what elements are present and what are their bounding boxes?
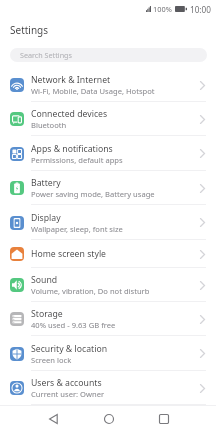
staticText: Connected devices: [31, 108, 108, 120]
staticText: 10:00: [190, 4, 211, 15]
staticText: Users & accounts: [31, 377, 102, 389]
button[interactable]: Users & accounts: [0, 371, 216, 405]
staticText: Permissions, default apps: [31, 155, 123, 165]
staticText: Display: [31, 212, 61, 224]
button[interactable]: Display: [0, 205, 216, 240]
button[interactable]: Security & location: [0, 336, 216, 371]
staticText: Sound: [31, 274, 58, 286]
button[interactable]: Battery: [0, 171, 216, 205]
button[interactable]: Sound: [0, 268, 216, 302]
staticText: Screen lock: [31, 355, 72, 365]
staticText: 100%: [153, 4, 172, 14]
button[interactable]: Connected devices: [0, 102, 216, 136]
staticText: Volume, vibration, Do not disturb: [31, 286, 150, 296]
button[interactable]: Home screen style: [0, 240, 216, 268]
staticText: Network & Internet: [31, 74, 111, 86]
button[interactable]: Back: [40, 405, 67, 432]
button[interactable]: Recents: [150, 405, 177, 432]
staticText: Home screen style: [31, 248, 107, 260]
staticText: 40% used - 9.63 GB free: [31, 320, 116, 330]
staticText: Apps & notifications: [31, 143, 113, 155]
staticText: Power saving mode, Battery usage: [31, 189, 155, 199]
staticText: Search Settings: [20, 50, 72, 60]
staticText: Wallpaper, sleep, font size: [31, 224, 123, 234]
staticText: Bluetooth: [31, 120, 67, 130]
button[interactable]: Network & Internet: [0, 68, 216, 102]
staticText: Battery: [31, 177, 61, 189]
button[interactable]: Home: [95, 405, 122, 432]
staticText: Wi-Fi, Mobile, Data Usage, Hotspot: [31, 86, 155, 96]
button[interactable]: Search Settings: [10, 48, 207, 62]
staticText: Current user: Owner: [31, 389, 105, 399]
staticText: Security & location: [31, 343, 108, 355]
staticText: Settings: [10, 23, 49, 37]
staticText: Storage: [31, 308, 63, 320]
button[interactable]: Apps & notifications: [0, 136, 216, 171]
button[interactable]: Storage: [0, 302, 216, 336]
